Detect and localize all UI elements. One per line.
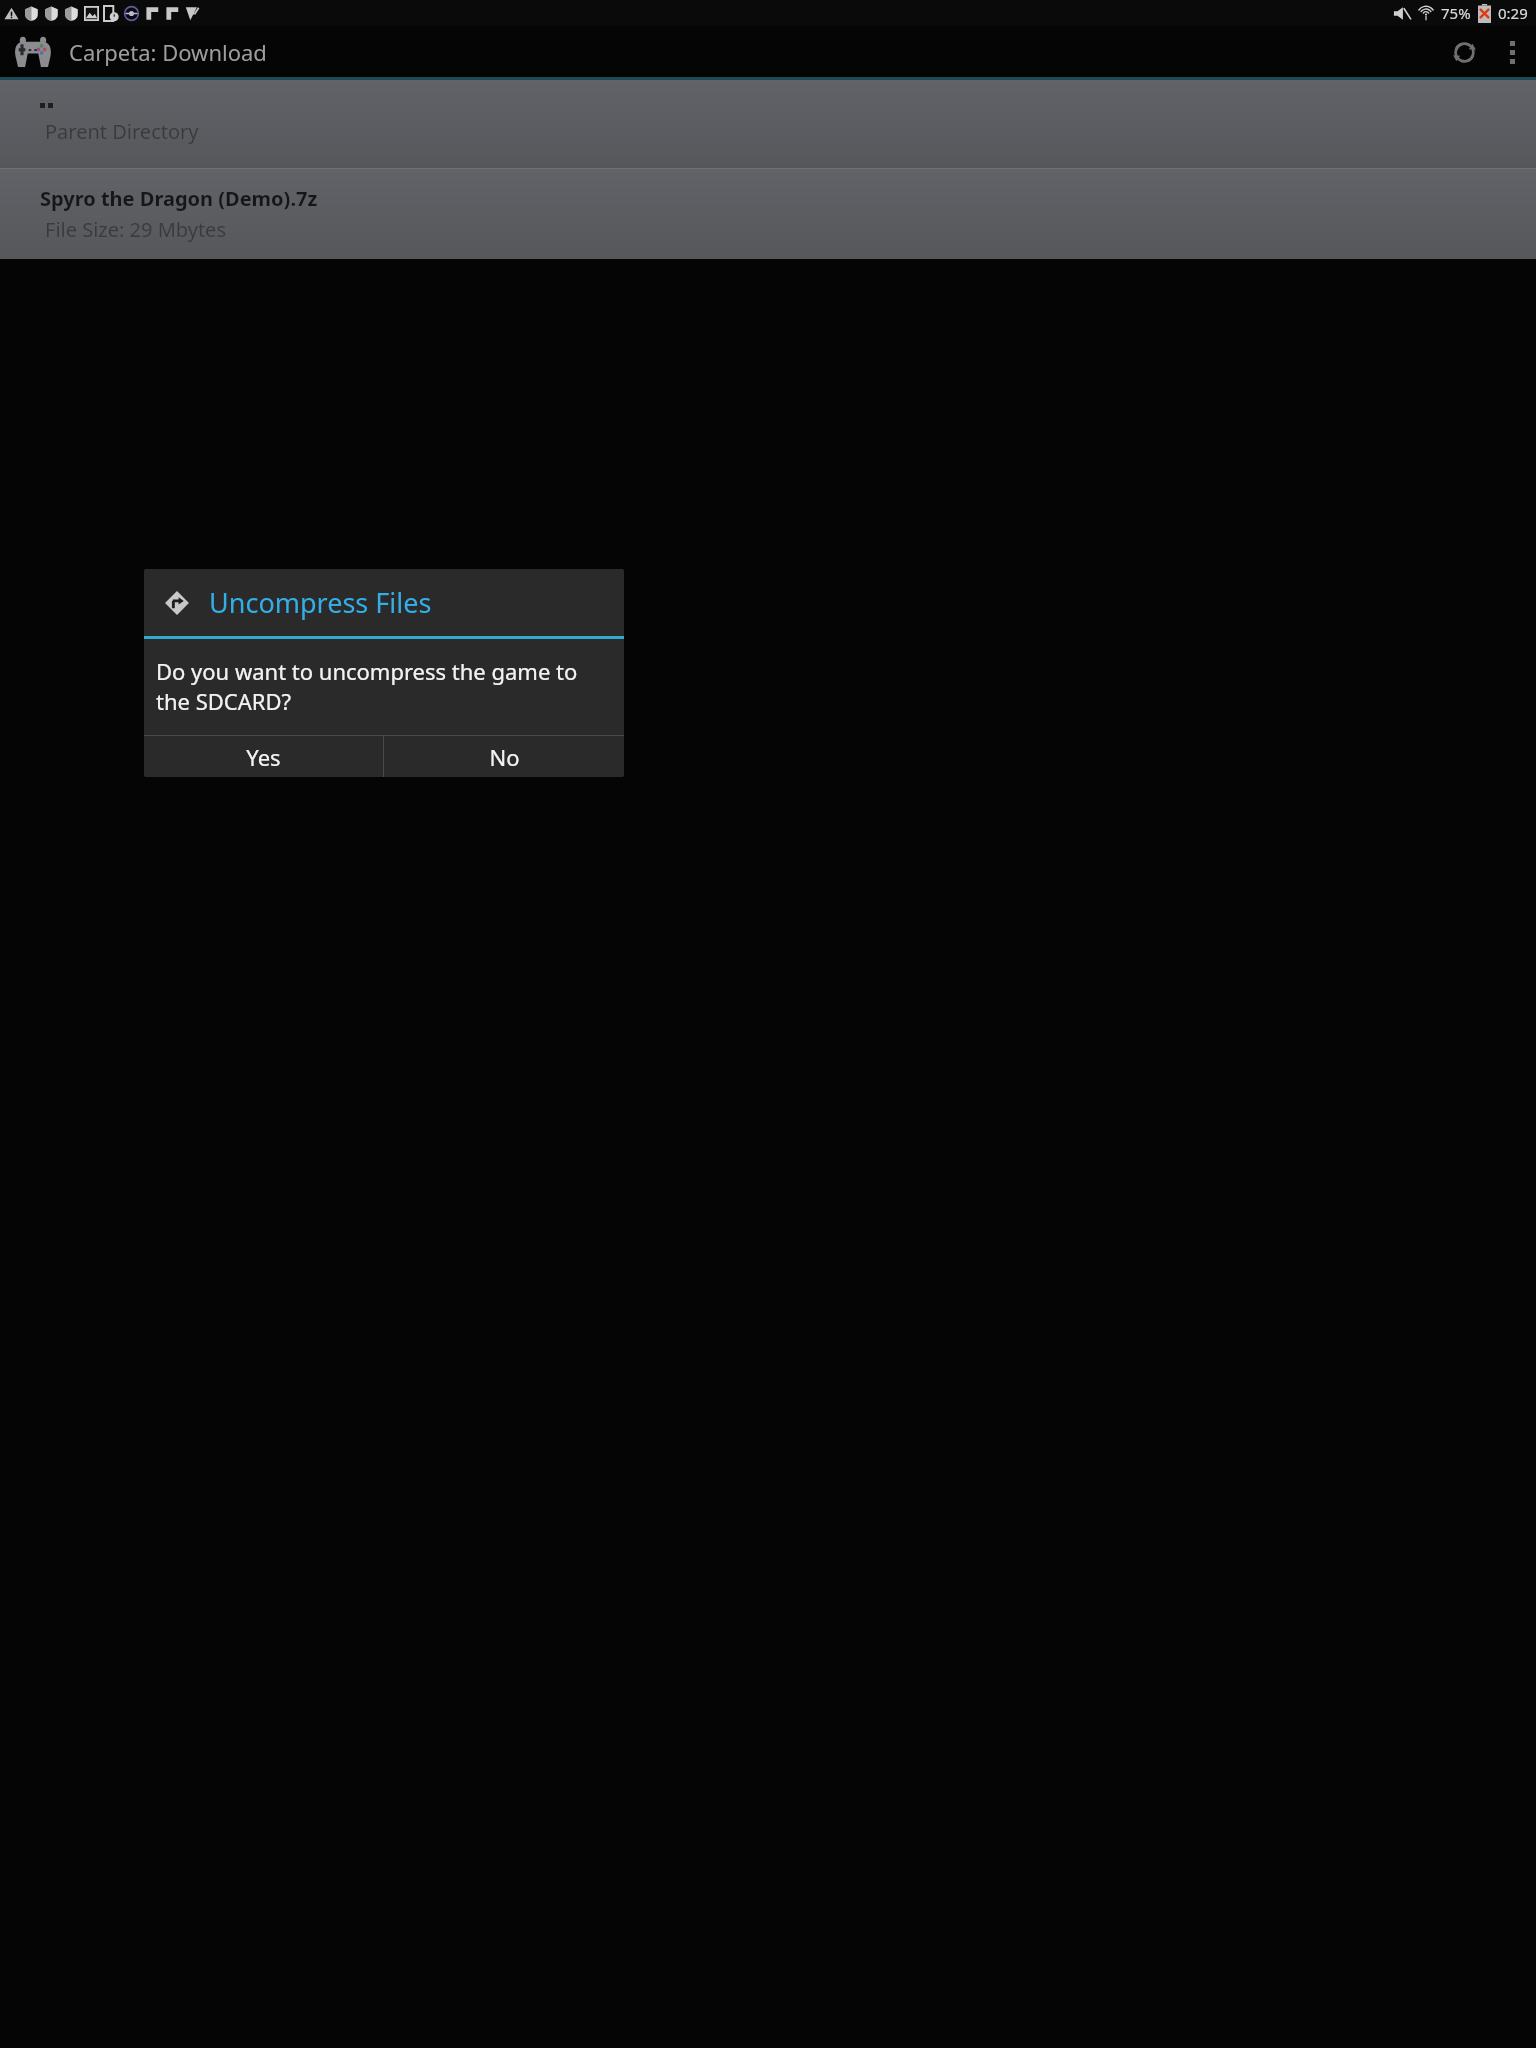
staticText: 0:29 (1498, 3, 1528, 23)
staticText: File Size: 29 Mbytes (45, 216, 226, 243)
staticText: Spyro the Dragon (Demo).7z (40, 185, 318, 212)
button[interactable]: Yes (144, 736, 383, 777)
button[interactable]: More options (1488, 28, 1536, 76)
button[interactable]: Refresh (1440, 28, 1488, 76)
staticText: 75% (1441, 3, 1471, 23)
button[interactable]: No (384, 736, 624, 777)
staticText: No (489, 742, 520, 772)
staticText: Carpeta: Download (69, 37, 267, 67)
staticText: Uncompress Files (209, 584, 432, 621)
staticText: Parent Directory (45, 118, 199, 145)
button[interactable]: Parent Directory (0, 80, 1536, 168)
staticText: Yes (246, 742, 281, 772)
staticText: Do you want to uncompress the game to th… (156, 656, 612, 716)
button[interactable]: Spyro the Dragon (Demo).7z (0, 169, 1536, 259)
